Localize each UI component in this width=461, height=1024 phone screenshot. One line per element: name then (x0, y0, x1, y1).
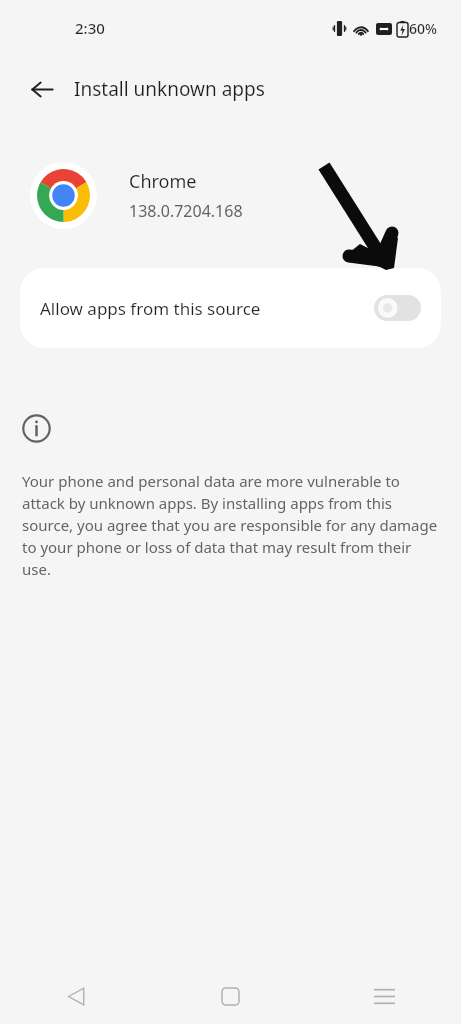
staticText: 138.0.7204.168 (129, 200, 243, 222)
staticText: Chrome (129, 169, 197, 194)
button[interactable]: Allow apps from this source toggle (374, 295, 421, 321)
staticText: 60% (409, 19, 437, 38)
button[interactable]: Back (22, 69, 62, 109)
staticText: 2:30 (75, 18, 105, 38)
button[interactable]: Back (0, 968, 153, 1024)
staticText: Your phone and personal data are more vu… (22, 471, 439, 580)
button[interactable]: Chrome (0, 160, 461, 230)
staticText: Install unknown apps (74, 76, 265, 102)
button[interactable]: Home (153, 968, 307, 1024)
button[interactable]: Allow apps from this source (20, 268, 441, 348)
staticText: Allow apps from this source (40, 297, 374, 320)
button[interactable]: Recent apps (307, 968, 461, 1024)
